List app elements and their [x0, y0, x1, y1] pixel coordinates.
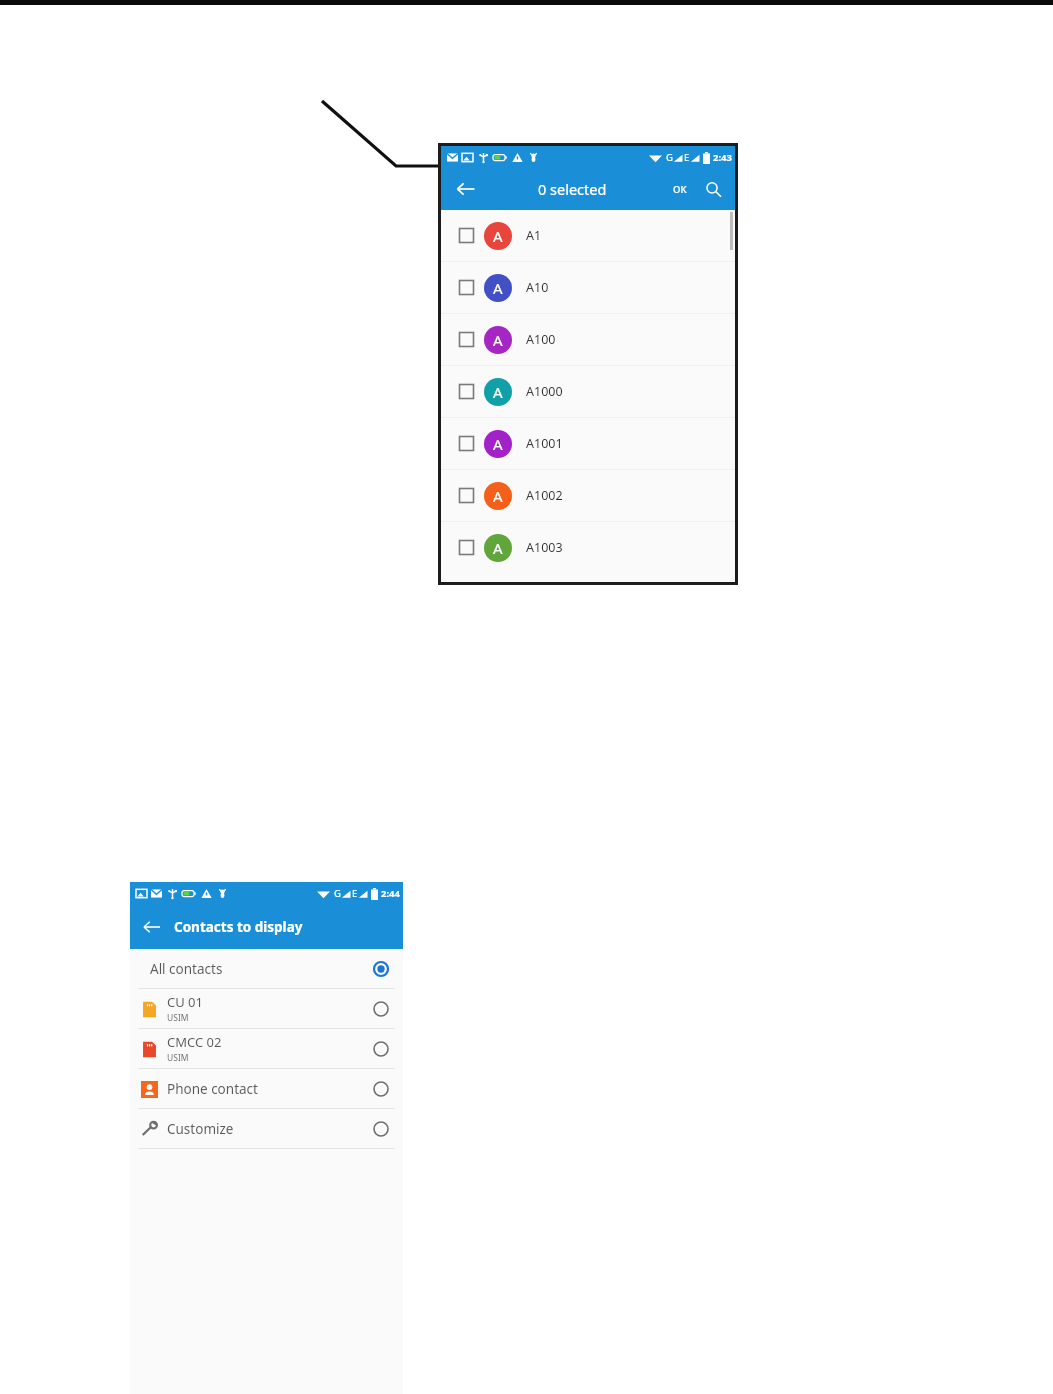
button[interactable]: Phone contact — [130, 1069, 403, 1108]
staticText: USIM — [167, 1052, 189, 1064]
staticText: Customize — [167, 1120, 234, 1138]
staticText: USIM — [167, 1012, 189, 1024]
staticText: Phone contact — [167, 1080, 258, 1098]
staticText: A — [493, 486, 503, 506]
staticText: A — [493, 330, 503, 350]
staticText: E — [352, 887, 358, 900]
staticText: A — [493, 382, 503, 402]
staticText: CMCC 02 — [167, 1033, 222, 1051]
staticText: 2:43 — [713, 151, 732, 164]
staticText: A1003 — [526, 539, 563, 556]
staticText: A10 — [526, 279, 549, 296]
staticText: E — [684, 151, 690, 164]
button[interactable]: Back — [449, 172, 483, 206]
button[interactable]: A — [441, 262, 735, 313]
button[interactable]: OK — [673, 172, 687, 206]
staticText: A — [493, 538, 503, 558]
staticText: A — [493, 434, 503, 454]
staticText: G — [666, 151, 673, 164]
other: CMCC 02 — [371, 1039, 391, 1059]
staticText: A1002 — [526, 487, 563, 504]
button[interactable]: Search — [697, 173, 729, 205]
other: All contacts — [371, 959, 391, 979]
button[interactable]: A — [441, 470, 735, 521]
staticText: A1 — [526, 227, 542, 244]
button[interactable]: CU 01 — [130, 989, 403, 1028]
staticText: A1001 — [526, 435, 563, 452]
other: Phone contact — [371, 1079, 391, 1099]
staticText: A1000 — [526, 383, 563, 400]
staticText: Contacts to display — [174, 918, 303, 936]
staticText: 0 selected — [538, 179, 607, 199]
staticText: G — [334, 887, 341, 900]
button[interactable]: CMCC 02 — [130, 1029, 403, 1068]
staticText: 2:44 — [381, 887, 400, 900]
other: CU 01 — [371, 999, 391, 1019]
button[interactable]: Back — [130, 904, 403, 949]
button[interactable]: Back — [441, 168, 735, 210]
staticText: All contacts — [150, 960, 223, 978]
button[interactable]: A — [441, 418, 735, 469]
staticText: A — [493, 278, 503, 298]
staticText: A100 — [526, 331, 556, 348]
button[interactable]: A — [441, 522, 735, 573]
button[interactable]: A — [441, 210, 735, 261]
button[interactable]: A — [441, 314, 735, 365]
button[interactable]: Customize — [130, 1109, 403, 1148]
button[interactable]: A — [441, 366, 735, 417]
button[interactable]: Back — [136, 911, 168, 943]
button[interactable]: All contacts — [130, 949, 403, 988]
other: Customize — [371, 1119, 391, 1139]
staticText: A — [493, 226, 503, 246]
staticText: CU 01 — [167, 993, 203, 1011]
staticText: OK — [673, 183, 687, 196]
